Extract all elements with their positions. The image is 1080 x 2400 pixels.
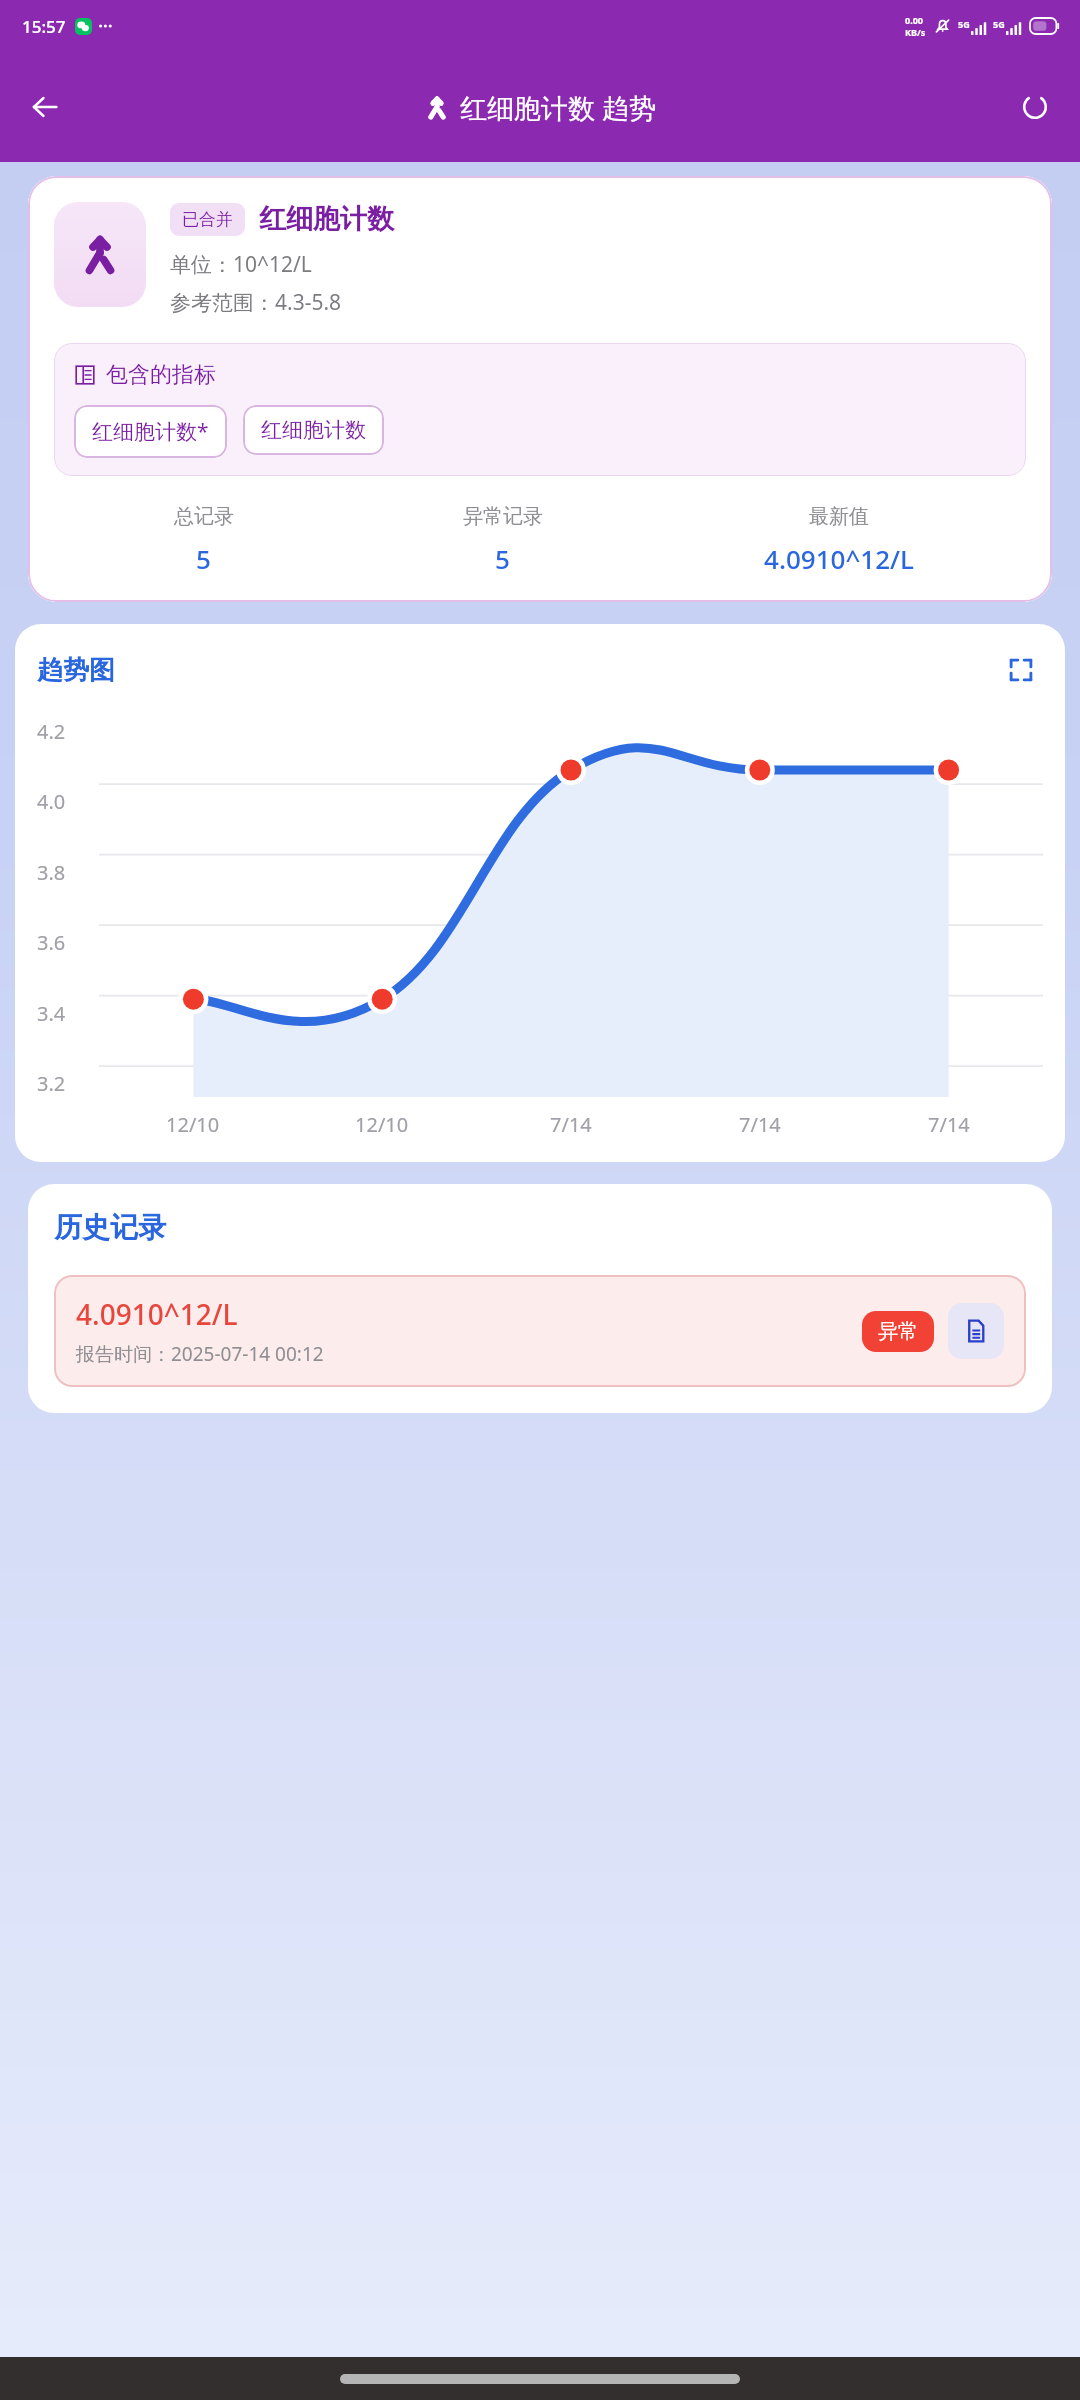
button[interactable]: 4.0910^12/L	[54, 1275, 1026, 1387]
staticText: 最新值	[809, 504, 869, 529]
staticText: 12/10	[355, 1111, 409, 1138]
staticText: 异常	[878, 1319, 918, 1344]
staticText: 12/10	[166, 1111, 220, 1138]
staticText: 红细胞计数*	[92, 417, 209, 446]
staticText: 3.2	[37, 1070, 66, 1097]
staticText: 异常记录	[463, 504, 543, 529]
staticText: 3.6	[37, 929, 66, 956]
staticText: 3.4	[37, 1000, 66, 1027]
staticText: 红细胞计数	[259, 202, 394, 236]
button[interactable]: 红细胞计数*	[74, 405, 227, 458]
button[interactable]: 已合并	[28, 176, 1052, 602]
staticText: 总记录	[174, 504, 234, 529]
button[interactable]: 红细胞计数	[243, 405, 384, 455]
staticText: 5G	[958, 18, 970, 30]
staticText: 4.2	[37, 718, 66, 745]
staticText: 包含的指标	[106, 361, 216, 389]
staticText: 5	[495, 541, 510, 576]
staticText: 5	[196, 541, 211, 576]
staticText: 5G	[993, 18, 1005, 30]
staticText: 15:57	[22, 15, 66, 38]
button[interactable]: Report	[948, 1303, 1004, 1359]
staticText: 已合并	[182, 209, 233, 230]
staticText: 红细胞计数 趋势	[460, 89, 657, 126]
staticText: 报告时间：2025-07-14 00:12	[76, 1341, 324, 1367]
staticText: 7/14	[550, 1111, 592, 1138]
button[interactable]: Fullscreen	[999, 648, 1043, 692]
staticText: 4.0	[37, 788, 66, 815]
button[interactable]: Refresh	[1004, 76, 1066, 138]
staticText: 7/14	[928, 1111, 970, 1138]
staticText: 4.0910^12/L	[764, 541, 914, 576]
staticText: 3.8	[37, 859, 66, 886]
staticText: KB/s	[905, 26, 926, 38]
button[interactable]: Back	[14, 76, 76, 138]
staticText: 4.0910^12/L	[76, 1295, 238, 1333]
staticText: 单位：10^12/L	[170, 250, 312, 279]
staticText: 0.00	[905, 14, 923, 26]
staticText: 趋势图	[37, 654, 115, 687]
staticText: 历史记录	[54, 1210, 166, 1245]
staticText: 红细胞计数	[261, 417, 366, 443]
staticText: 参考范围：4.3-5.8	[170, 288, 342, 317]
staticText: 7/14	[739, 1111, 781, 1138]
